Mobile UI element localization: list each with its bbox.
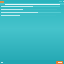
button[interactable]: Continue [56,61,63,64]
button[interactable]: App logo [0,1,4,3]
button[interactable] [1,14,63,16]
button[interactable] [1,11,63,13]
button[interactable] [1,5,63,7]
button[interactable] [1,8,63,10]
